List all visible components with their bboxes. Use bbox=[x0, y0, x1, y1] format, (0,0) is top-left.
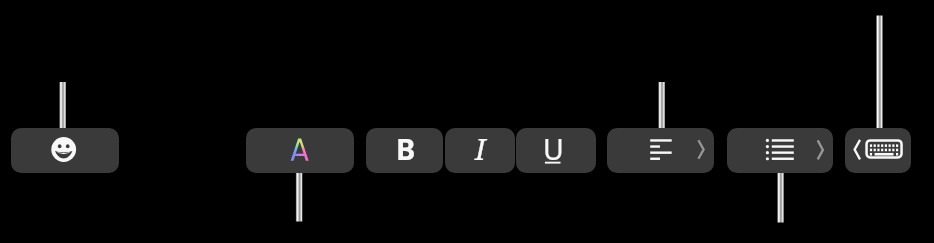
staticText: I bbox=[475, 129, 486, 168]
staticText: B bbox=[396, 129, 416, 168]
button[interactable]: Lists bbox=[727, 128, 833, 173]
button[interactable]: Underline bbox=[516, 128, 596, 173]
button[interactable]: Text colour bbox=[246, 128, 354, 173]
button[interactable]: Italic bbox=[445, 128, 515, 173]
staticText: U bbox=[543, 130, 564, 169]
button[interactable]: Emoji bbox=[11, 128, 119, 173]
button[interactable]: Bold bbox=[366, 128, 443, 173]
button[interactable]: Keyboard bbox=[845, 128, 911, 173]
button[interactable]: Alignment bbox=[607, 128, 714, 173]
